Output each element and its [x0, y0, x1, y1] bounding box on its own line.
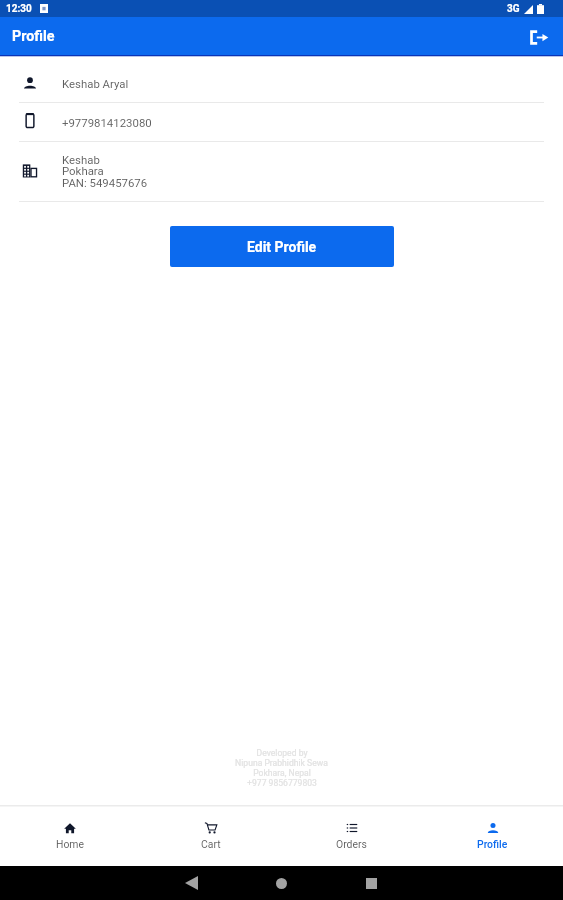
button[interactable]: Keshab Aryal [0, 64, 563, 102]
button[interactable]: Logout [523, 22, 553, 52]
staticText: 3G [507, 3, 520, 15]
staticText: Profile [12, 28, 55, 45]
button[interactable]: +9779814123080 [0, 103, 563, 141]
button[interactable]: Edit Profile [170, 226, 394, 267]
staticText: Nipuna Prabhidhik Sewa [235, 758, 328, 768]
button[interactable]: Back [185, 876, 198, 890]
staticText: +9779814123080 [62, 116, 152, 129]
staticText: Developed by [256, 748, 308, 758]
staticText: Cart [201, 838, 221, 850]
staticText: 12:30 [6, 3, 32, 15]
button[interactable]: Orders [281, 807, 422, 866]
staticText: Edit Profile [247, 239, 317, 255]
button[interactable]: Profile [422, 807, 563, 866]
staticText: Orders [336, 838, 367, 850]
staticText: Home [56, 838, 84, 850]
button[interactable]: Keshab Pokhara PAN: 549457676 [0, 142, 563, 201]
staticText: Keshab Pokhara PAN: 549457676 [62, 153, 148, 190]
staticText: Keshab Aryal [62, 77, 129, 90]
button[interactable]: Home [0, 807, 140, 866]
staticText: +977 9856779803 [247, 778, 317, 788]
button[interactable]: Home [276, 878, 287, 889]
staticText: Pokhara, Nepal [253, 768, 311, 778]
staticText: Profile [477, 838, 508, 850]
button[interactable]: Cart [140, 807, 281, 866]
